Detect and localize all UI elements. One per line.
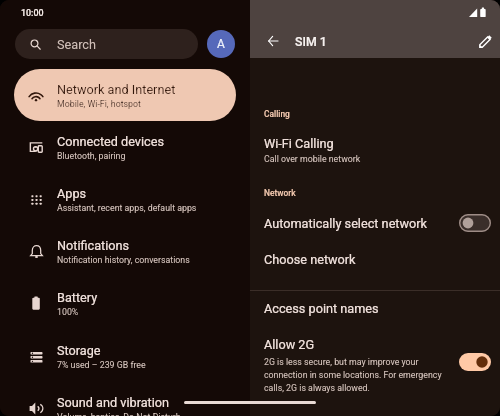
staticText: Access point names bbox=[264, 301, 379, 316]
staticText: Notifications bbox=[57, 238, 130, 253]
staticText: Notification history, conversations bbox=[57, 255, 190, 265]
staticText: 10:00 bbox=[21, 8, 44, 18]
staticText: Battery bbox=[57, 290, 98, 305]
staticText: Bluetooth, pairing bbox=[57, 151, 126, 161]
button[interactable]: Edit bbox=[467, 23, 500, 59]
button[interactable]: Notifications bbox=[0, 226, 250, 277]
button[interactable]: Disabled bbox=[459, 214, 491, 232]
staticText: Mobile, Wi-Fi, hotspot bbox=[57, 99, 141, 109]
button[interactable]: Access point names bbox=[250, 293, 500, 324]
staticText: Automatically select network bbox=[264, 216, 459, 231]
staticText: Apps bbox=[57, 186, 87, 201]
button[interactable]: Sound and vibration bbox=[0, 383, 250, 416]
staticText: 100% bbox=[57, 307, 79, 317]
staticText: Volume, haptics, Do Not Disturb bbox=[57, 412, 181, 416]
button[interactable]: Storage bbox=[0, 331, 250, 382]
staticText: Choose network bbox=[264, 252, 356, 267]
button[interactable]: Back bbox=[255, 23, 291, 59]
staticText: Storage bbox=[57, 343, 101, 358]
button[interactable]: Wi-Fi Calling bbox=[250, 136, 500, 170]
button[interactable]: Choose network bbox=[250, 244, 500, 275]
staticText: A bbox=[217, 37, 225, 51]
staticText: Network and Internet bbox=[57, 82, 176, 97]
staticText: Call over mobile network bbox=[264, 154, 361, 164]
staticText: Connected devices bbox=[57, 134, 165, 149]
button[interactable]: Enabled bbox=[459, 353, 491, 371]
staticText: 7% used – 239 GB free bbox=[57, 360, 146, 370]
button[interactable]: Account bbox=[207, 30, 235, 58]
button[interactable]: Allow 2G bbox=[250, 337, 500, 395]
button[interactable]: Network and Internet bbox=[14, 69, 236, 121]
button[interactable]: Search bbox=[15, 29, 198, 59]
staticText: SIM 1 bbox=[295, 35, 327, 49]
staticText: 2G is less secure, but may improve your … bbox=[264, 357, 443, 394]
staticText: Assistant, recent apps, default apps bbox=[57, 203, 197, 213]
button[interactable]: Automatically select network bbox=[250, 207, 500, 239]
button[interactable]: Battery bbox=[0, 278, 250, 329]
staticText: Wi-Fi Calling bbox=[264, 136, 334, 151]
staticText: Network bbox=[264, 188, 296, 198]
staticText: Allow 2G bbox=[264, 337, 315, 352]
button[interactable]: Apps bbox=[0, 174, 250, 225]
staticText: Sound and vibration bbox=[57, 395, 170, 410]
staticText: Search bbox=[57, 37, 96, 52]
staticText: Calling bbox=[264, 109, 290, 119]
button[interactable]: Connected devices bbox=[0, 122, 250, 173]
